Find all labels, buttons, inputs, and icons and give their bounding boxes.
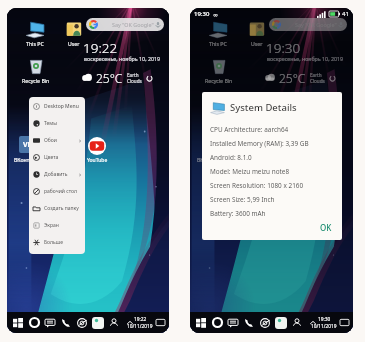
staticText: YouTube: [87, 157, 108, 164]
staticText: 19:30: [194, 10, 210, 18]
staticText: Model: Meizu meizu note8: [210, 167, 290, 176]
button[interactable]: Browser: [74, 312, 90, 333]
button[interactable]: Show hidden: [122, 312, 138, 333]
button[interactable]: People: [106, 312, 122, 333]
staticText: OK: [320, 222, 332, 233]
staticText: 25°C: [96, 70, 123, 86]
button[interactable]: Search: [209, 312, 225, 333]
staticText: воскресенье, ноябрь 10, 2019: [84, 55, 161, 62]
button[interactable]: рабочий стол: [29, 183, 85, 200]
staticText: воскресенье, ноябрь 10, 2019: [267, 55, 344, 62]
staticText: ВКонтакте: [197, 156, 224, 163]
staticText: Desktop Menu: [44, 103, 79, 110]
staticText: 10/11/2019: [311, 323, 337, 330]
button[interactable]: Темы: [29, 115, 85, 132]
staticText: Цвета: [44, 154, 59, 161]
staticText: 19:22: [134, 316, 147, 323]
button[interactable]: VK: [202, 136, 219, 153]
staticText: This PC: [26, 40, 44, 47]
staticText: Earth: [310, 72, 322, 78]
staticText: Обои: [44, 137, 57, 144]
button[interactable]: Files: [90, 312, 106, 333]
button[interactable]: [88, 137, 106, 155]
staticText: Clouds: [127, 78, 142, 84]
staticText: Screen Resolution: 1080 x 2160: [210, 181, 304, 190]
staticText: Android: 8.1.0: [210, 153, 252, 162]
staticText: 25°C: [279, 70, 306, 86]
staticText: 10/11/2019: [127, 323, 153, 330]
button[interactable]: OK: [320, 222, 342, 240]
button[interactable]: Экран: [29, 217, 85, 234]
button[interactable]: Files: [273, 312, 289, 333]
staticText: VK: [23, 140, 33, 150]
button[interactable]: Start: [193, 312, 209, 333]
button[interactable]: Task View: [42, 312, 58, 333]
staticText: ВКонтакте: [14, 156, 41, 163]
staticText: рабочий стол: [44, 188, 77, 195]
staticText: User: [251, 40, 263, 47]
button[interactable]: VK: [19, 136, 36, 153]
staticText: This PC: [209, 40, 227, 47]
button[interactable]: Action center: [340, 318, 349, 327]
staticText: System Details: [230, 101, 297, 114]
button[interactable]: Phone: [58, 312, 74, 333]
staticText: 41: [342, 10, 349, 18]
staticText: Темы: [44, 120, 57, 127]
staticText: CPU Architecture: aarch64: [210, 125, 289, 134]
staticText: 19:30: [266, 39, 301, 57]
button[interactable]: Start: [10, 312, 26, 333]
button[interactable]: Больше: [29, 234, 85, 251]
button[interactable]: Phone: [241, 312, 257, 333]
button[interactable]: Task View: [225, 312, 241, 333]
button[interactable]: Desktop Menu: [29, 98, 85, 115]
staticText: Clouds: [310, 78, 325, 84]
button[interactable]: Search: [26, 312, 42, 333]
button[interactable]: Show hidden: [305, 312, 321, 333]
staticText: ∞: [213, 11, 218, 18]
button[interactable]: Say "OK Google": [269, 18, 347, 31]
staticText: Recycle Bin: [205, 77, 233, 84]
staticText: Say "OK Google": [295, 21, 337, 28]
staticText: Earth: [127, 72, 139, 78]
button[interactable]: Action center: [156, 318, 165, 327]
button[interactable]: Добавить: [29, 166, 85, 183]
staticText: 19:22: [83, 39, 118, 57]
button[interactable]: [271, 137, 289, 155]
staticText: User: [68, 40, 80, 47]
button[interactable]: Цвета: [29, 149, 85, 166]
button[interactable]: Обои: [29, 132, 85, 149]
button[interactable]: Создать папку: [29, 200, 85, 217]
staticText: Recycle Bin: [22, 77, 50, 84]
staticText: 19:30: [318, 316, 331, 323]
staticText: Добавить: [44, 171, 68, 178]
staticText: Больше: [44, 239, 63, 246]
staticText: Installed Memory (RAM): 3,39 GB: [210, 139, 309, 148]
button[interactable]: Say "OK Google": [86, 18, 164, 31]
staticText: Screen Size: 5,99 Inch: [210, 195, 275, 204]
staticText: Battery: 3600 mAh: [210, 209, 266, 218]
staticText: Создать папку: [44, 205, 79, 212]
staticText: Say "OK Google": [112, 21, 154, 28]
button[interactable]: People: [289, 312, 305, 333]
staticText: VK: [206, 140, 216, 150]
staticText: Экран: [44, 222, 59, 229]
button[interactable]: Browser: [257, 312, 273, 333]
